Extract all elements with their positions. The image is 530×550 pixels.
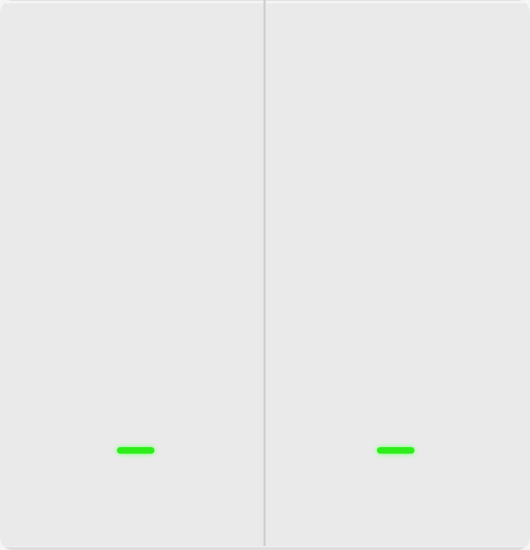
button[interactable]: Right switch	[265, 0, 530, 550]
button[interactable]: Left switch	[0, 0, 265, 550]
